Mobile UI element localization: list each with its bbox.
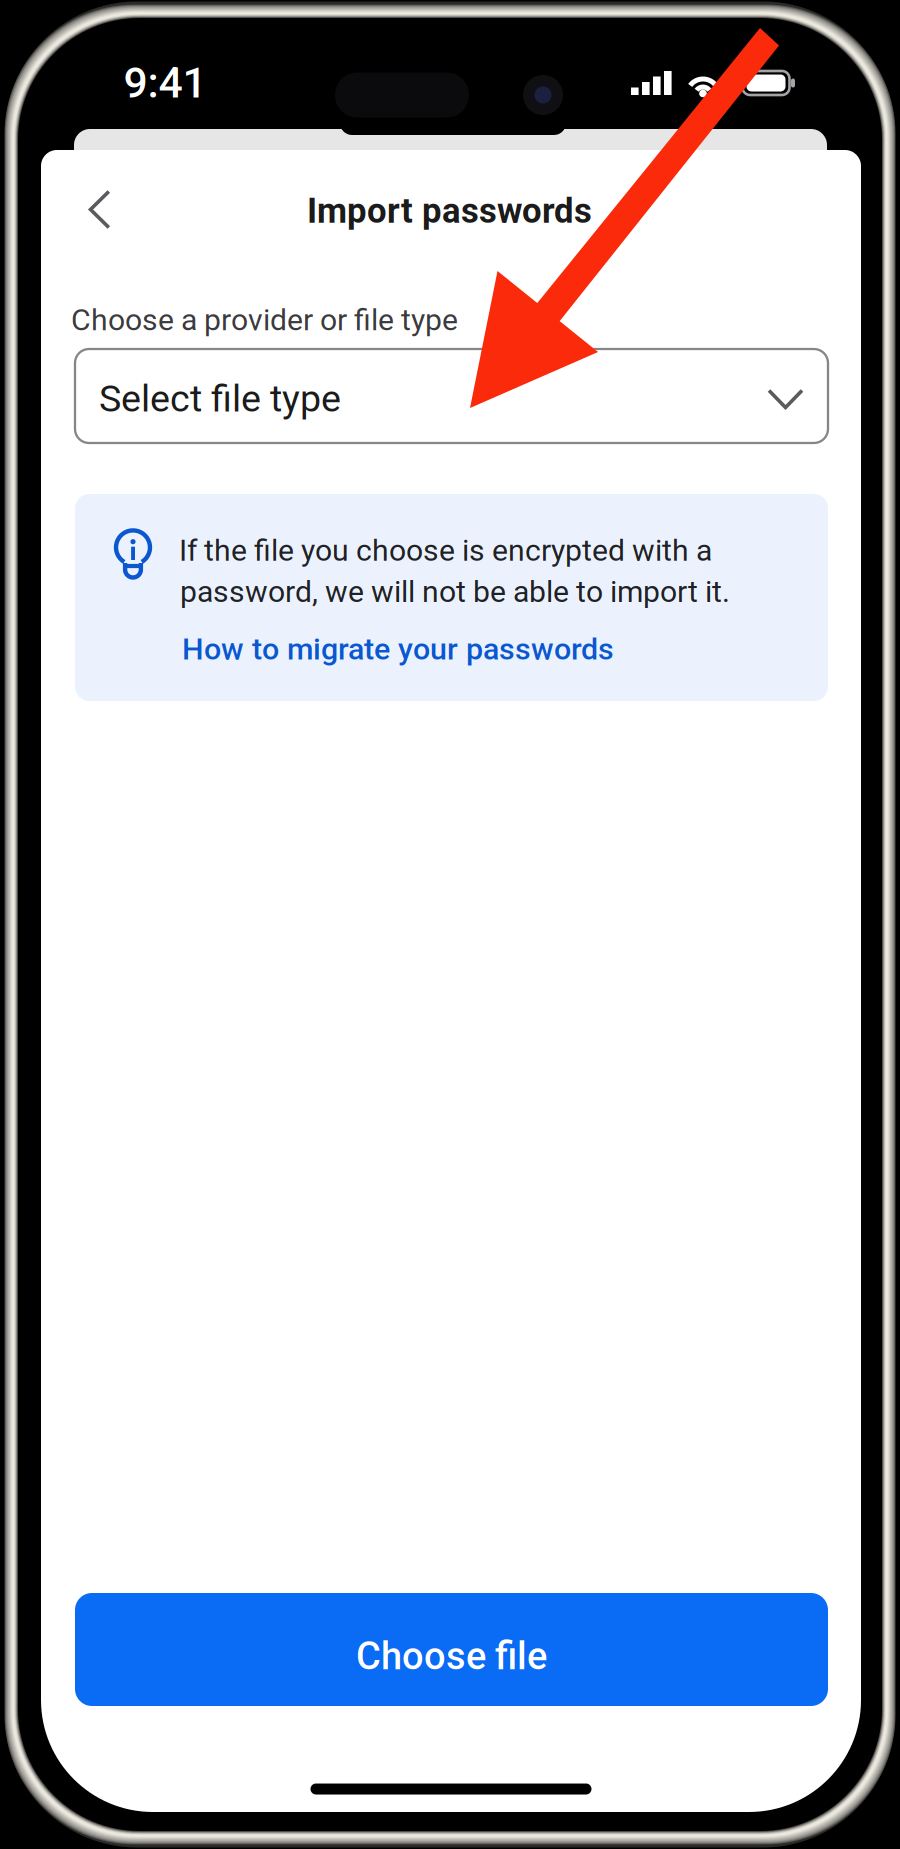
staticText: Choose file: [356, 1634, 547, 1678]
staticText: How to migrate your passwords: [182, 631, 614, 667]
button[interactable]: Select file type: [75, 349, 828, 443]
button[interactable]: Choose file: [75, 1593, 828, 1706]
staticText: Select file type: [99, 377, 341, 421]
button[interactable]: How to migrate your passwords: [182, 622, 782, 676]
staticText: If the file you choose is encrypted with…: [179, 533, 712, 568]
staticText: 9:41: [123, 58, 206, 108]
button[interactable]: Back: [60, 169, 140, 249]
staticText: password, we will not be able to import …: [180, 574, 730, 609]
staticText: Choose a provider or file type: [71, 302, 458, 338]
staticText: Import passwords: [307, 191, 592, 231]
